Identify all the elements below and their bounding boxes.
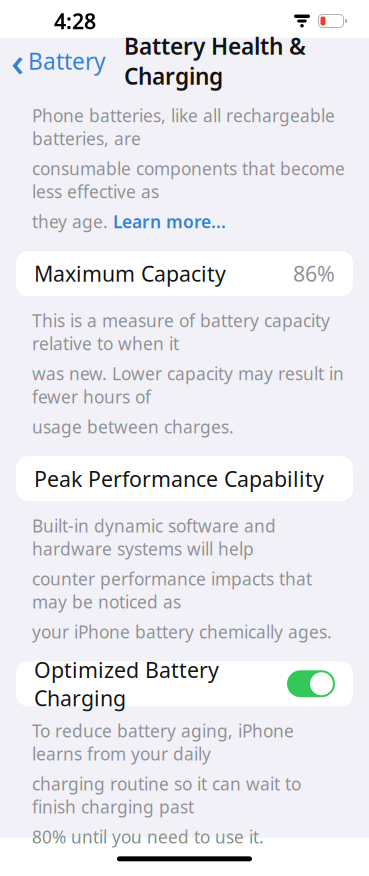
staticText: Peak Performance Capability <box>34 464 324 493</box>
staticText: Battery <box>28 46 106 76</box>
staticText: your iPhone battery chemically ages. <box>32 620 332 643</box>
staticText: they age. <box>32 210 108 233</box>
staticText: Battery Health & Charging <box>124 31 306 91</box>
staticText: To reduce battery aging, iPhone learns f… <box>32 719 294 765</box>
staticText: counter performance impacts that may be … <box>32 567 312 613</box>
staticText: ‹ <box>11 34 24 87</box>
staticText: Phone batteries, like all rechargeable b… <box>32 104 335 150</box>
staticText: Built-in dynamic software and hardware s… <box>32 514 276 560</box>
staticText: usage between charges. <box>32 415 234 438</box>
button[interactable]: Learn more... <box>113 210 226 233</box>
staticText: Optimized Battery Charging <box>34 655 219 712</box>
staticText: This is a measure of battery capacity re… <box>32 309 330 355</box>
staticText: 86% <box>293 259 335 288</box>
staticText: 80% until you need to use it. <box>32 825 264 848</box>
button[interactable]: Peak Performance Capability <box>16 456 353 501</box>
button[interactable]: ‹ <box>0 40 112 82</box>
staticText: was new. Lower capacity may result in fe… <box>32 362 344 408</box>
staticText: charging routine so it can wait to finis… <box>32 772 301 818</box>
staticText: consumable components that become less e… <box>32 157 345 203</box>
staticText: Maximum Capacity <box>34 259 226 288</box>
button[interactable]: Optimized Battery Charging <box>287 670 335 697</box>
staticText: Learn more... <box>113 210 226 233</box>
